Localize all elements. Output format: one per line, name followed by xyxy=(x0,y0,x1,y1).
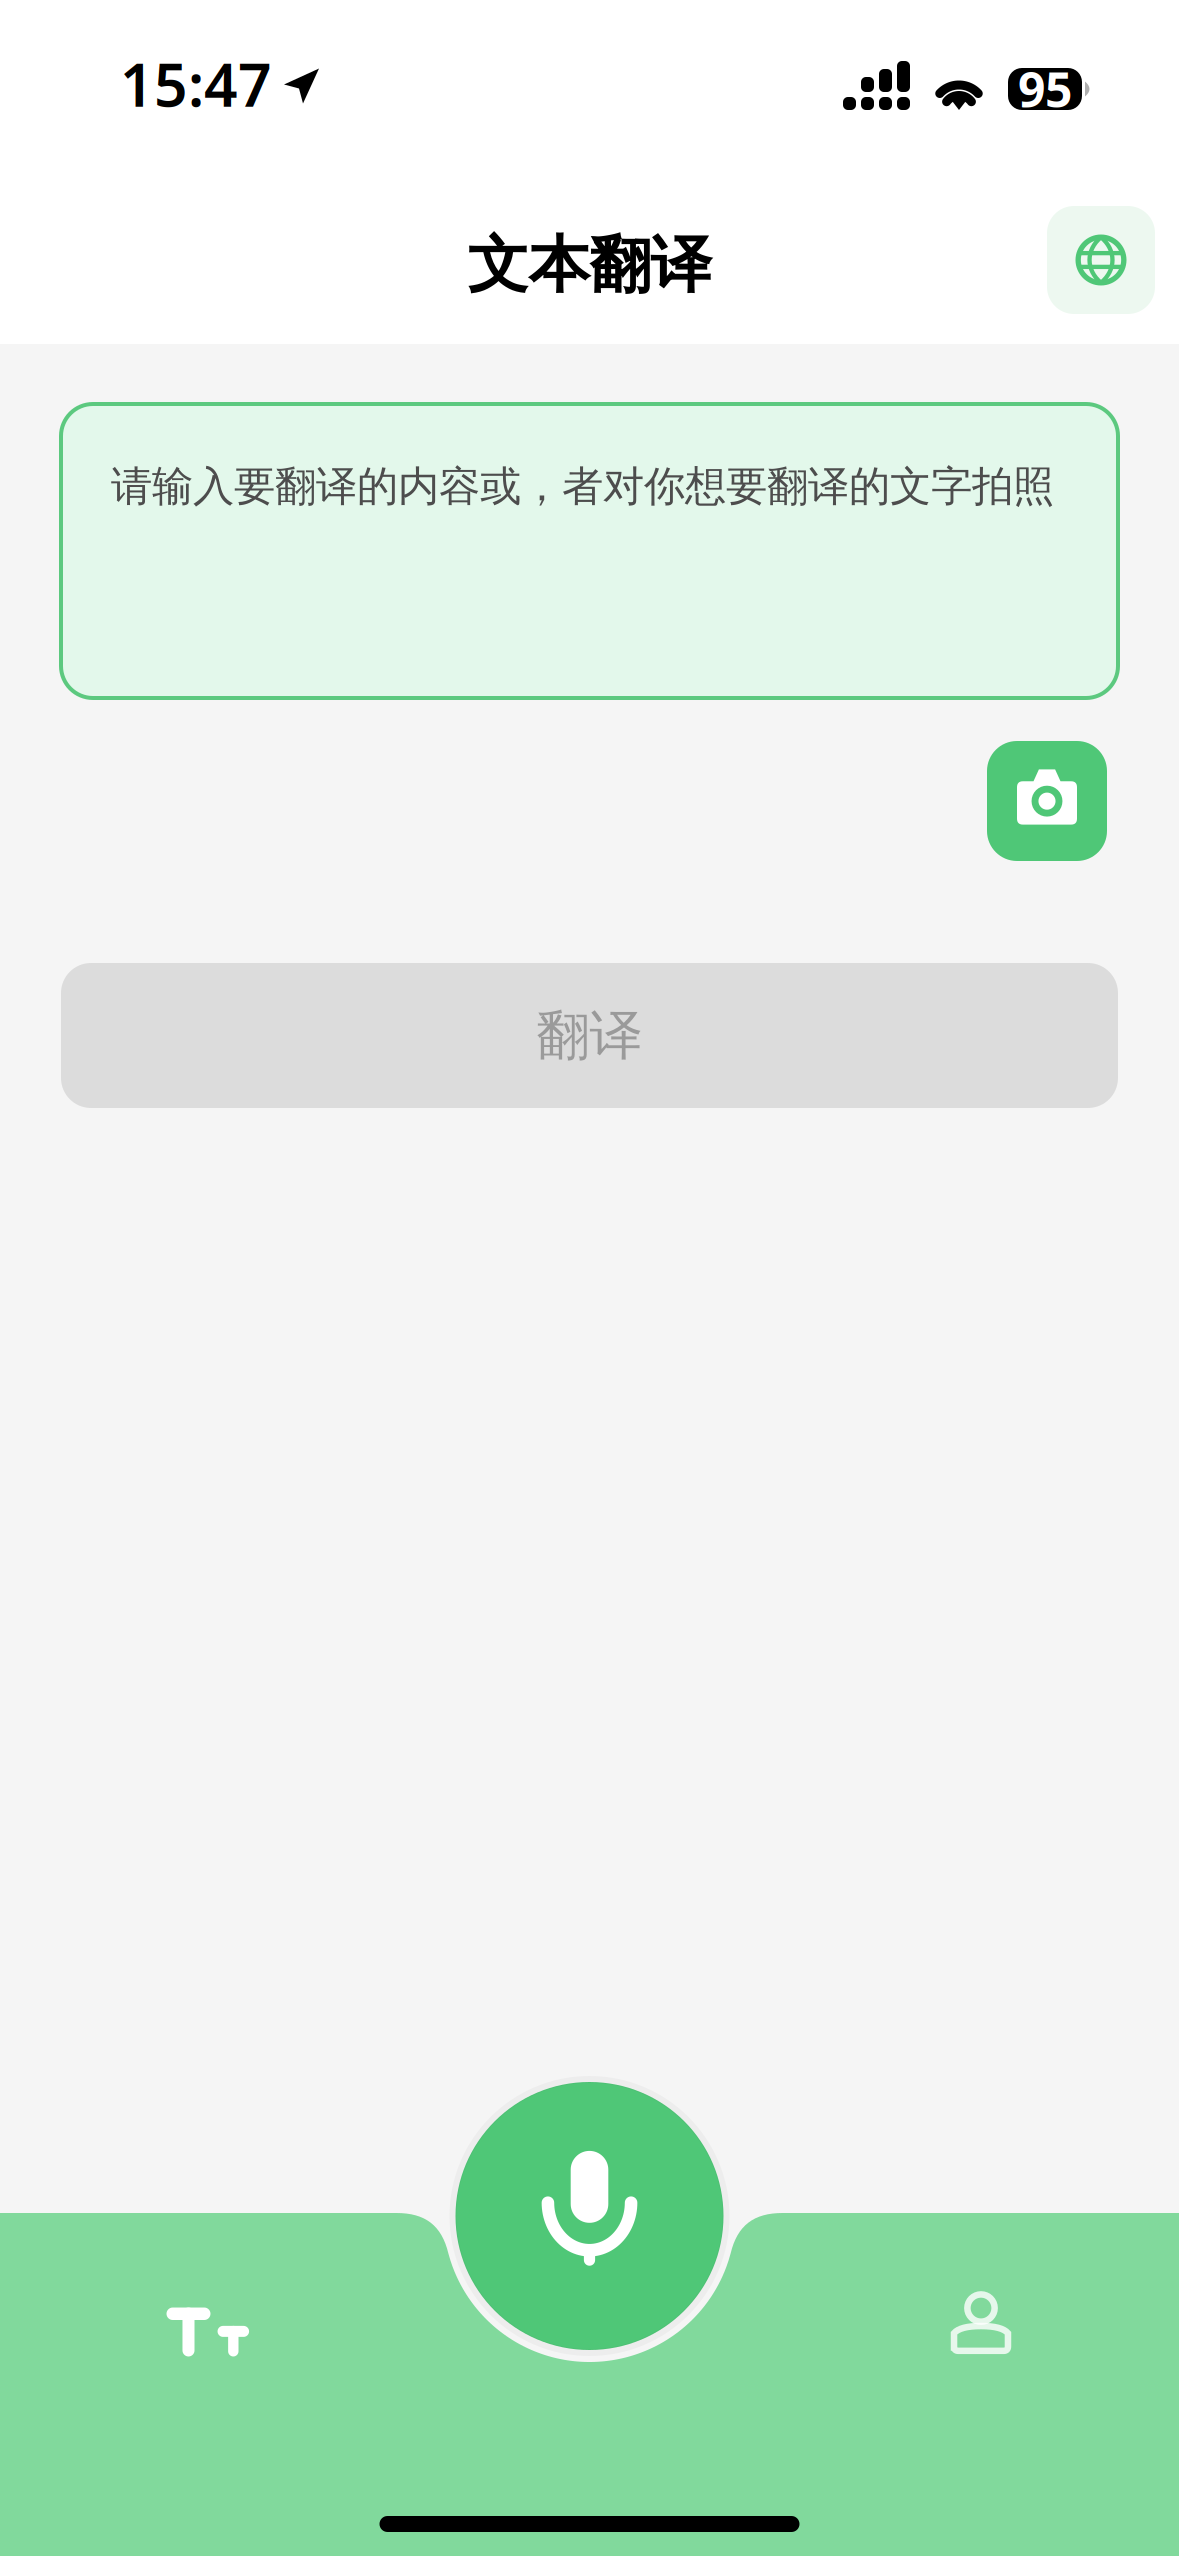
button[interactable]: 请输入要翻译的内容或，者对你想要翻译的文字拍照 xyxy=(61,404,1118,698)
button[interactable]: Profile xyxy=(828,2257,1148,2407)
staticText: 翻译 xyxy=(536,1003,642,1068)
staticText: 文本翻译 xyxy=(467,227,711,303)
button[interactable]: Camera xyxy=(987,741,1107,861)
button[interactable]: Text size xyxy=(48,2257,368,2407)
staticText: 95 xyxy=(1018,57,1072,121)
button[interactable]: 翻译 xyxy=(61,963,1118,1108)
staticText: 15:47 xyxy=(120,45,272,123)
staticText: 请输入要翻译的内容或，者对你想要翻译的文字拍照 xyxy=(111,461,1054,512)
button[interactable]: Voice input xyxy=(455,2082,723,2350)
button[interactable]: Language xyxy=(1047,206,1155,314)
